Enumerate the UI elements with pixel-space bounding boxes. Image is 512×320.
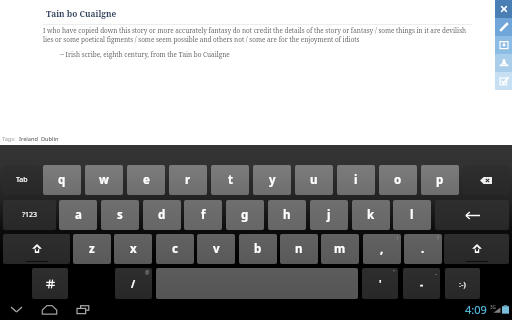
- staticText: Tain bo Cuailgne: [46, 8, 117, 19]
- staticText: x: [130, 241, 137, 257]
- staticText: y: [269, 172, 276, 188]
- staticText: o: [394, 172, 402, 188]
- staticText: I who have copied down this story or mor…: [43, 26, 475, 44]
- staticText: :-): [459, 279, 466, 289]
- staticText: p: [436, 172, 444, 188]
- staticText: v: [213, 241, 220, 257]
- staticText: ': [379, 277, 382, 291]
- staticText: _: [435, 269, 438, 276]
- staticText: 3G: [490, 304, 496, 310]
- staticText: a: [75, 207, 82, 223]
- button[interactable]: l: [393, 200, 431, 230]
- button[interactable]: d: [143, 200, 181, 230]
- staticText: q: [58, 172, 66, 188]
- staticText: z: [89, 241, 95, 257]
- staticText: Tags:: [2, 135, 16, 143]
- button[interactable]: a: [59, 200, 97, 230]
- staticText: !: [397, 235, 399, 242]
- button[interactable]: x: [114, 234, 152, 264]
- staticText: s: [117, 207, 123, 223]
- staticText: f: [201, 207, 206, 223]
- button[interactable]: Switch keyboard: [32, 268, 68, 299]
- staticText: r: [185, 172, 191, 188]
- staticText: Ireland Dublin: [16, 135, 59, 143]
- button[interactable]: y: [253, 165, 291, 195]
- staticText: -: [420, 277, 424, 291]
- button[interactable]: Tab: [3, 165, 41, 195]
- staticText: i: [354, 172, 358, 188]
- staticText: j: [327, 207, 331, 223]
- staticText: -- Irish scribe, eighth century, from th…: [60, 50, 230, 59]
- staticText: l: [410, 207, 414, 223]
- button[interactable]: Home: [33, 299, 66, 320]
- button[interactable]: Save: [495, 36, 512, 54]
- button[interactable]: s: [101, 200, 139, 230]
- button[interactable]: Backspace: [463, 165, 509, 195]
- staticText: n: [295, 241, 303, 257]
- button[interactable]: r: [169, 165, 207, 195]
- button[interactable]: ?123: [3, 200, 56, 230]
- button[interactable]: i: [337, 165, 375, 195]
- button[interactable]: t: [211, 165, 249, 195]
- button[interactable]: Shift: [444, 234, 509, 264]
- staticText: g: [241, 207, 249, 223]
- button[interactable]: Close: [495, 0, 512, 18]
- button[interactable]: .: [404, 234, 442, 264]
- button[interactable]: m: [321, 234, 359, 264]
- button[interactable]: Select: [495, 72, 512, 90]
- button[interactable]: h: [268, 200, 306, 230]
- staticText: Tab: [16, 175, 28, 185]
- button[interactable]: z: [73, 234, 111, 264]
- button[interactable]: c: [156, 234, 194, 264]
- button[interactable]: n: [280, 234, 318, 264]
- button[interactable]: ': [362, 268, 398, 299]
- button[interactable]: Enter: [435, 200, 509, 230]
- staticText: b: [254, 241, 262, 257]
- button[interactable]: Back: [0, 299, 33, 320]
- staticText: ?123: [22, 210, 38, 220]
- staticText: 4:09: [465, 302, 487, 317]
- button[interactable]: j: [310, 200, 348, 230]
- button[interactable]: Stamp: [495, 54, 512, 72]
- button[interactable]: o: [379, 165, 417, 195]
- staticText: c: [172, 241, 178, 257]
- button[interactable]: Recents: [66, 299, 99, 320]
- button[interactable]: Edit: [495, 18, 512, 36]
- button[interactable]: u: [295, 165, 333, 195]
- staticText: ": [393, 269, 396, 276]
- button[interactable]: v: [197, 234, 235, 264]
- button[interactable]: f: [184, 200, 222, 230]
- staticText: u: [310, 172, 318, 188]
- staticText: @: [145, 269, 150, 276]
- staticText: t: [228, 172, 233, 188]
- staticText: d: [158, 207, 166, 223]
- button[interactable]: -: [403, 268, 440, 299]
- staticText: /: [131, 277, 136, 291]
- staticText: ,: [380, 241, 384, 257]
- staticText: w: [99, 172, 109, 188]
- button[interactable]: /: [115, 268, 152, 299]
- button[interactable]: ,: [363, 234, 401, 264]
- button[interactable]: p: [421, 165, 459, 195]
- button[interactable]: Shift: [3, 234, 70, 264]
- staticText: k: [367, 207, 375, 223]
- button[interactable]: q: [43, 165, 81, 195]
- staticText: e: [143, 172, 150, 188]
- button[interactable]: :-): [445, 268, 480, 299]
- button[interactable]: g: [226, 200, 264, 230]
- staticText: m: [334, 241, 346, 257]
- button[interactable]: e: [127, 165, 165, 195]
- button[interactable]: b: [239, 234, 277, 264]
- button[interactable]: k: [352, 200, 390, 230]
- staticText: h: [283, 207, 291, 223]
- button[interactable]: w: [85, 165, 123, 195]
- staticText: .: [421, 241, 425, 257]
- staticText: ?: [437, 235, 440, 242]
